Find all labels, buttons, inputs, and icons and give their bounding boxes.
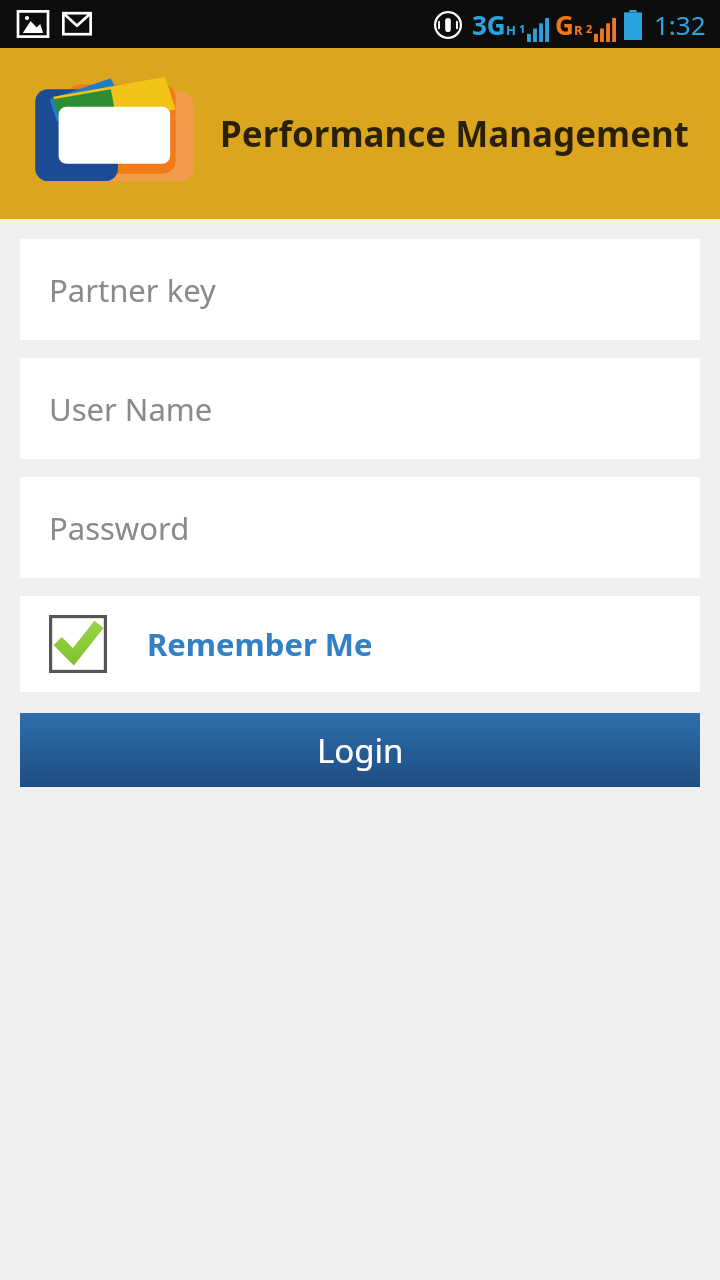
staticText: 2 <box>586 21 593 36</box>
staticText: 3G <box>472 7 506 42</box>
button[interactable]: Remember Me <box>20 596 700 692</box>
button[interactable]: Password <box>20 477 700 578</box>
button[interactable]: User Name <box>20 358 700 459</box>
staticText: H <box>506 21 516 39</box>
staticText: 1:32 <box>654 7 706 42</box>
staticText: Login <box>317 728 404 773</box>
button[interactable]: Partner key <box>20 239 700 340</box>
staticText: G <box>555 7 574 42</box>
button[interactable]: Login <box>20 713 700 787</box>
staticText: Remember Me <box>147 623 373 665</box>
staticText: User Name <box>49 388 213 430</box>
staticText: 1 <box>519 21 526 36</box>
staticText: R <box>574 21 583 39</box>
staticText: Partner key <box>49 269 216 311</box>
staticText: Password <box>49 507 190 549</box>
staticText: Performance Management <box>220 110 689 158</box>
